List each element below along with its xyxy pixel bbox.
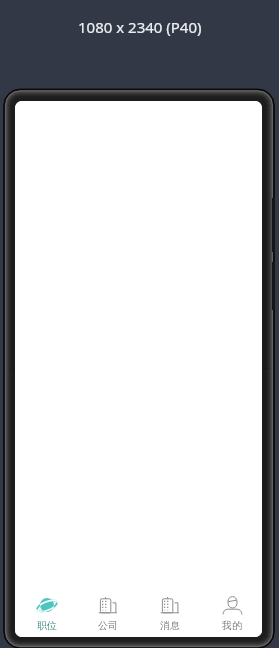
other: Jobs	[35, 596, 59, 614]
button[interactable]: Profile	[200, 589, 262, 637]
other: Profile	[220, 596, 244, 614]
staticText: 职位	[37, 619, 57, 632]
button[interactable]: Jobs	[15, 589, 76, 637]
staticText: 消息	[160, 619, 180, 632]
staticText: 公司	[98, 619, 118, 632]
staticText: 我的	[222, 619, 242, 632]
button[interactable]: Companies	[76, 589, 138, 637]
other: Companies	[96, 596, 120, 614]
button[interactable]: Messages	[138, 589, 200, 637]
staticText: 1080 x 2340 (P40)	[78, 17, 202, 37]
other: Messages	[158, 596, 182, 614]
